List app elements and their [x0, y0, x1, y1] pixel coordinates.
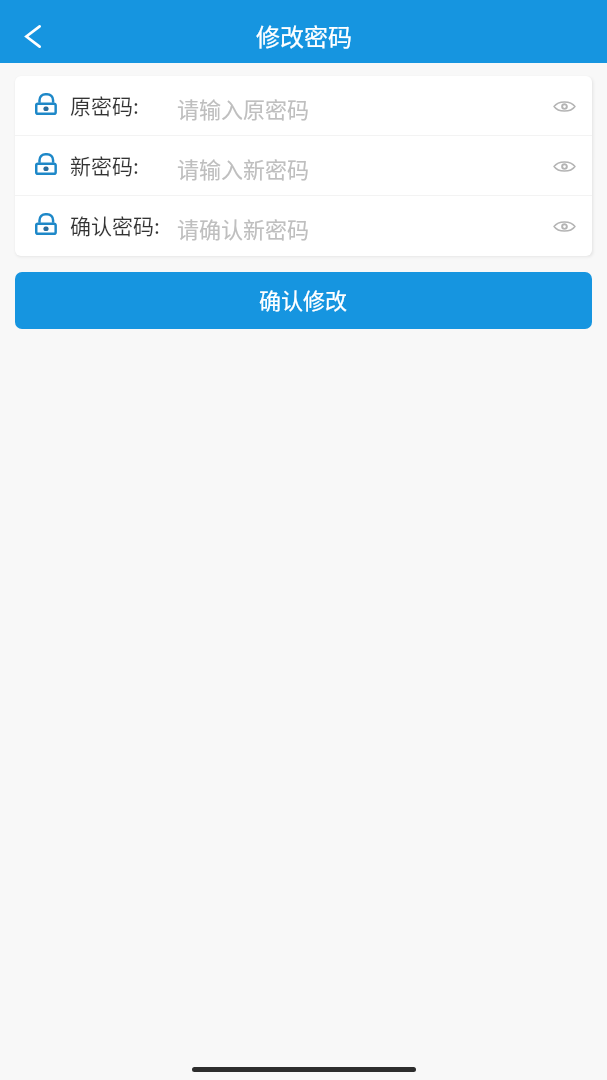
staticText: 确认密码:: [70, 210, 160, 240]
staticText: 确认修改: [259, 283, 348, 315]
button[interactable]: Back: [10, 9, 56, 55]
button[interactable]: Show password: [542, 204, 586, 248]
staticText: 新密码:: [70, 150, 139, 180]
button[interactable]: 确认密码:: [15, 196, 592, 256]
staticText: 请确认新密码: [177, 212, 310, 244]
button[interactable]: 新密码:: [15, 136, 592, 196]
staticText: 修改密码: [256, 18, 352, 53]
staticText: 请输入新密码: [177, 152, 310, 184]
button[interactable]: Show password: [542, 84, 586, 128]
button[interactable]: 原密码:: [15, 76, 592, 136]
button[interactable]: 确认修改: [15, 272, 592, 329]
staticText: 请输入原密码: [177, 92, 310, 124]
button[interactable]: Show password: [542, 144, 586, 188]
staticText: 原密码:: [70, 90, 139, 120]
